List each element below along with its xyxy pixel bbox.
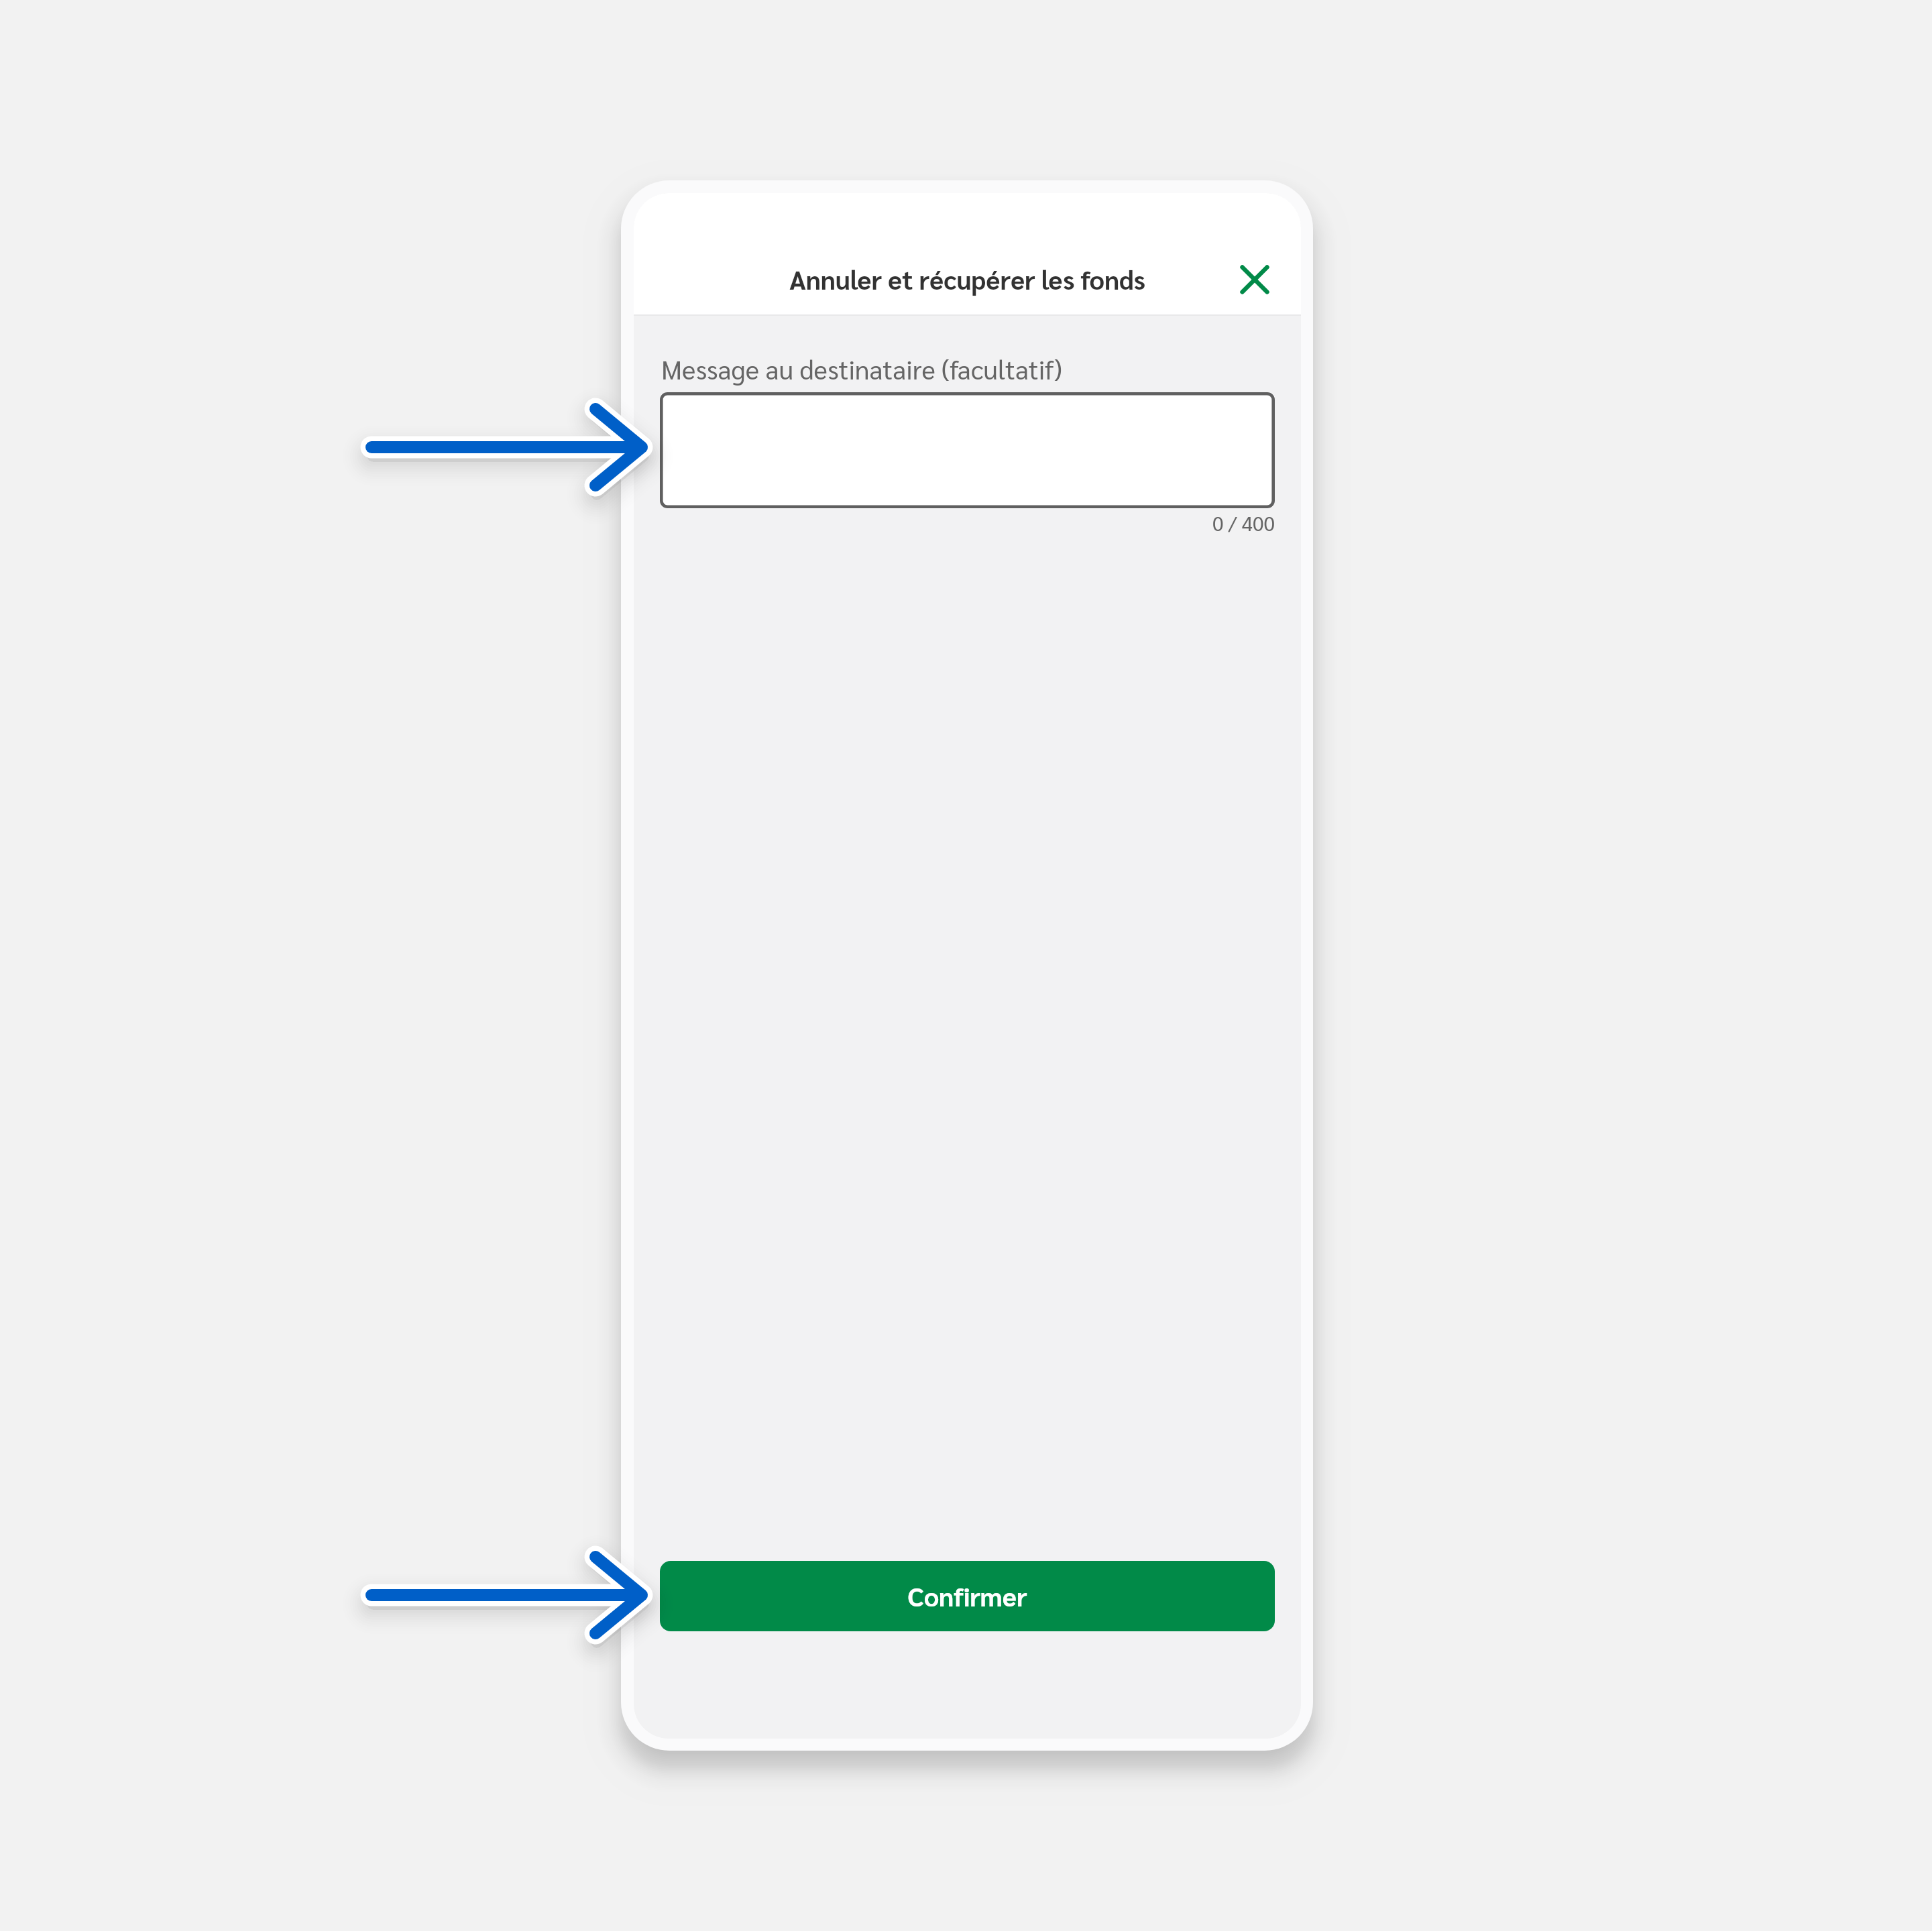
staticText: Annuler et récupérer les fonds: [634, 261, 1301, 304]
staticText: 0 / 400: [660, 510, 1275, 542]
button[interactable]: Fermer: [1223, 247, 1287, 312]
button[interactable]: Confirmer: [660, 1561, 1275, 1631]
staticText: Confirmer: [660, 1578, 1275, 1649]
staticText: Message au destinataire (facultatif): [661, 351, 1276, 392]
button[interactable]: [660, 392, 1275, 508]
